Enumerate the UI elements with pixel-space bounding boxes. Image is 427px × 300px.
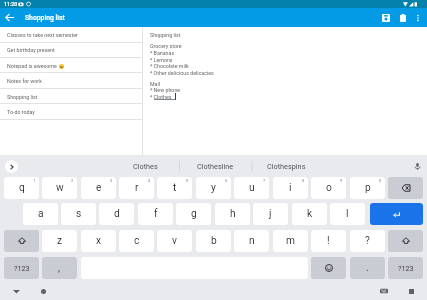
staticText: h xyxy=(230,208,236,220)
staticText: z xyxy=(57,235,63,247)
staticText: p xyxy=(365,182,371,194)
staticText: 3 xyxy=(110,178,113,183)
staticText: * Clothes xyxy=(150,94,172,100)
button[interactable]: More options xyxy=(408,8,427,27)
staticText: w xyxy=(56,182,64,194)
button[interactable]: j xyxy=(253,203,288,225)
button[interactable]: o xyxy=(311,177,346,199)
button[interactable]: Shift xyxy=(388,230,423,252)
staticText: 1 xyxy=(33,178,36,183)
button[interactable]: y xyxy=(196,177,231,199)
button[interactable]: Save note xyxy=(376,8,395,27)
button[interactable]: Shift xyxy=(4,230,39,252)
button[interactable]: m xyxy=(273,230,308,252)
staticText: ?123 xyxy=(14,264,30,272)
staticText: , xyxy=(58,262,61,274)
button[interactable]: u xyxy=(234,177,269,199)
staticText: . xyxy=(366,262,369,274)
button[interactable]: Enter xyxy=(370,203,423,225)
staticText: b xyxy=(211,235,217,247)
button[interactable]: ?123 xyxy=(388,257,423,279)
staticText: Grocery store xyxy=(150,43,182,49)
staticText: Mall xyxy=(150,81,161,87)
button[interactable]: ? xyxy=(350,230,385,252)
button[interactable]: d xyxy=(99,203,134,225)
staticText: Clothes xyxy=(133,162,158,171)
staticText: c xyxy=(134,235,140,247)
button[interactable]: Notes for work xyxy=(0,73,142,88)
button[interactable]: Switch keyboard xyxy=(377,284,391,298)
button[interactable]: Shopping list xyxy=(0,89,142,104)
button[interactable]: s xyxy=(61,203,96,225)
button[interactable]: x xyxy=(81,230,116,252)
button[interactable]: t xyxy=(157,177,192,199)
button[interactable]: ! xyxy=(311,230,346,252)
button[interactable]: i xyxy=(273,177,308,199)
button[interactable]: Home xyxy=(36,284,50,298)
staticText: 9 xyxy=(340,178,343,183)
button[interactable]: Notepad is awesome xyxy=(0,58,142,73)
button[interactable]: , xyxy=(42,257,77,279)
button[interactable]: To-do today xyxy=(0,104,142,119)
button[interactable]: w xyxy=(42,177,77,199)
button[interactable]: Clothesline xyxy=(180,155,250,177)
button[interactable]: Recent apps xyxy=(404,284,418,298)
button[interactable]: Clothes xyxy=(110,155,180,177)
button[interactable]: g xyxy=(176,203,211,225)
staticText: l xyxy=(346,208,349,220)
button[interactable]: Voice input xyxy=(410,159,424,173)
button[interactable]: . xyxy=(350,257,385,279)
button[interactable]: p xyxy=(350,177,385,199)
staticText: j xyxy=(269,208,272,220)
button[interactable]: ?123 xyxy=(4,257,39,279)
staticText: 6 xyxy=(225,178,228,183)
staticText: x xyxy=(96,235,102,247)
button[interactable]: n xyxy=(234,230,269,252)
staticText: 4 xyxy=(148,178,151,183)
staticText: a xyxy=(38,208,44,220)
button[interactable]: Classes to take next semester xyxy=(0,27,142,42)
button[interactable]: f xyxy=(138,203,173,225)
staticText: k xyxy=(307,208,313,220)
staticText: 2 xyxy=(71,178,74,183)
staticText: u xyxy=(249,182,255,194)
button[interactable]: Back xyxy=(9,284,23,298)
staticText: q xyxy=(19,182,25,194)
button[interactable]: h xyxy=(215,203,250,225)
staticText: * Chocolate milk xyxy=(150,63,189,69)
button[interactable]: l xyxy=(330,203,365,225)
staticText: n xyxy=(249,235,255,247)
staticText: s xyxy=(76,208,82,220)
button[interactable]: v xyxy=(157,230,192,252)
staticText: Shopping list xyxy=(25,14,65,22)
button[interactable]: Delete note xyxy=(393,8,412,27)
staticText: ?123 xyxy=(398,264,414,272)
staticText: d xyxy=(114,208,120,220)
staticText: 11:20 xyxy=(4,1,18,7)
staticText: r xyxy=(135,182,139,194)
staticText: Notepad is awesome xyxy=(7,63,57,69)
staticText: 5 xyxy=(186,178,189,183)
button[interactable]: Expand toolbar xyxy=(5,160,18,173)
staticText: y xyxy=(211,182,216,194)
button[interactable]: Clothespins xyxy=(251,155,321,177)
button[interactable]: Backspace xyxy=(388,177,423,199)
button[interactable]: k xyxy=(292,203,327,225)
staticText: Classes to take next semester xyxy=(7,32,78,38)
button[interactable]: Emoji xyxy=(311,257,346,279)
staticText: o xyxy=(326,182,332,194)
staticText: To-do today xyxy=(7,109,35,115)
button[interactable]: b xyxy=(196,230,231,252)
staticText: e xyxy=(96,182,102,194)
staticText: i xyxy=(289,182,292,194)
button[interactable]: z xyxy=(42,230,77,252)
button[interactable]: c xyxy=(119,230,154,252)
button[interactable]: Navigate up xyxy=(0,8,19,27)
button[interactable]: e xyxy=(81,177,116,199)
button[interactable]: q xyxy=(4,177,39,199)
button[interactable]: Get birthday present xyxy=(0,42,142,57)
button[interactable]: a xyxy=(23,203,58,225)
button[interactable]: r xyxy=(119,177,154,199)
staticText: Shopping list xyxy=(7,94,38,100)
